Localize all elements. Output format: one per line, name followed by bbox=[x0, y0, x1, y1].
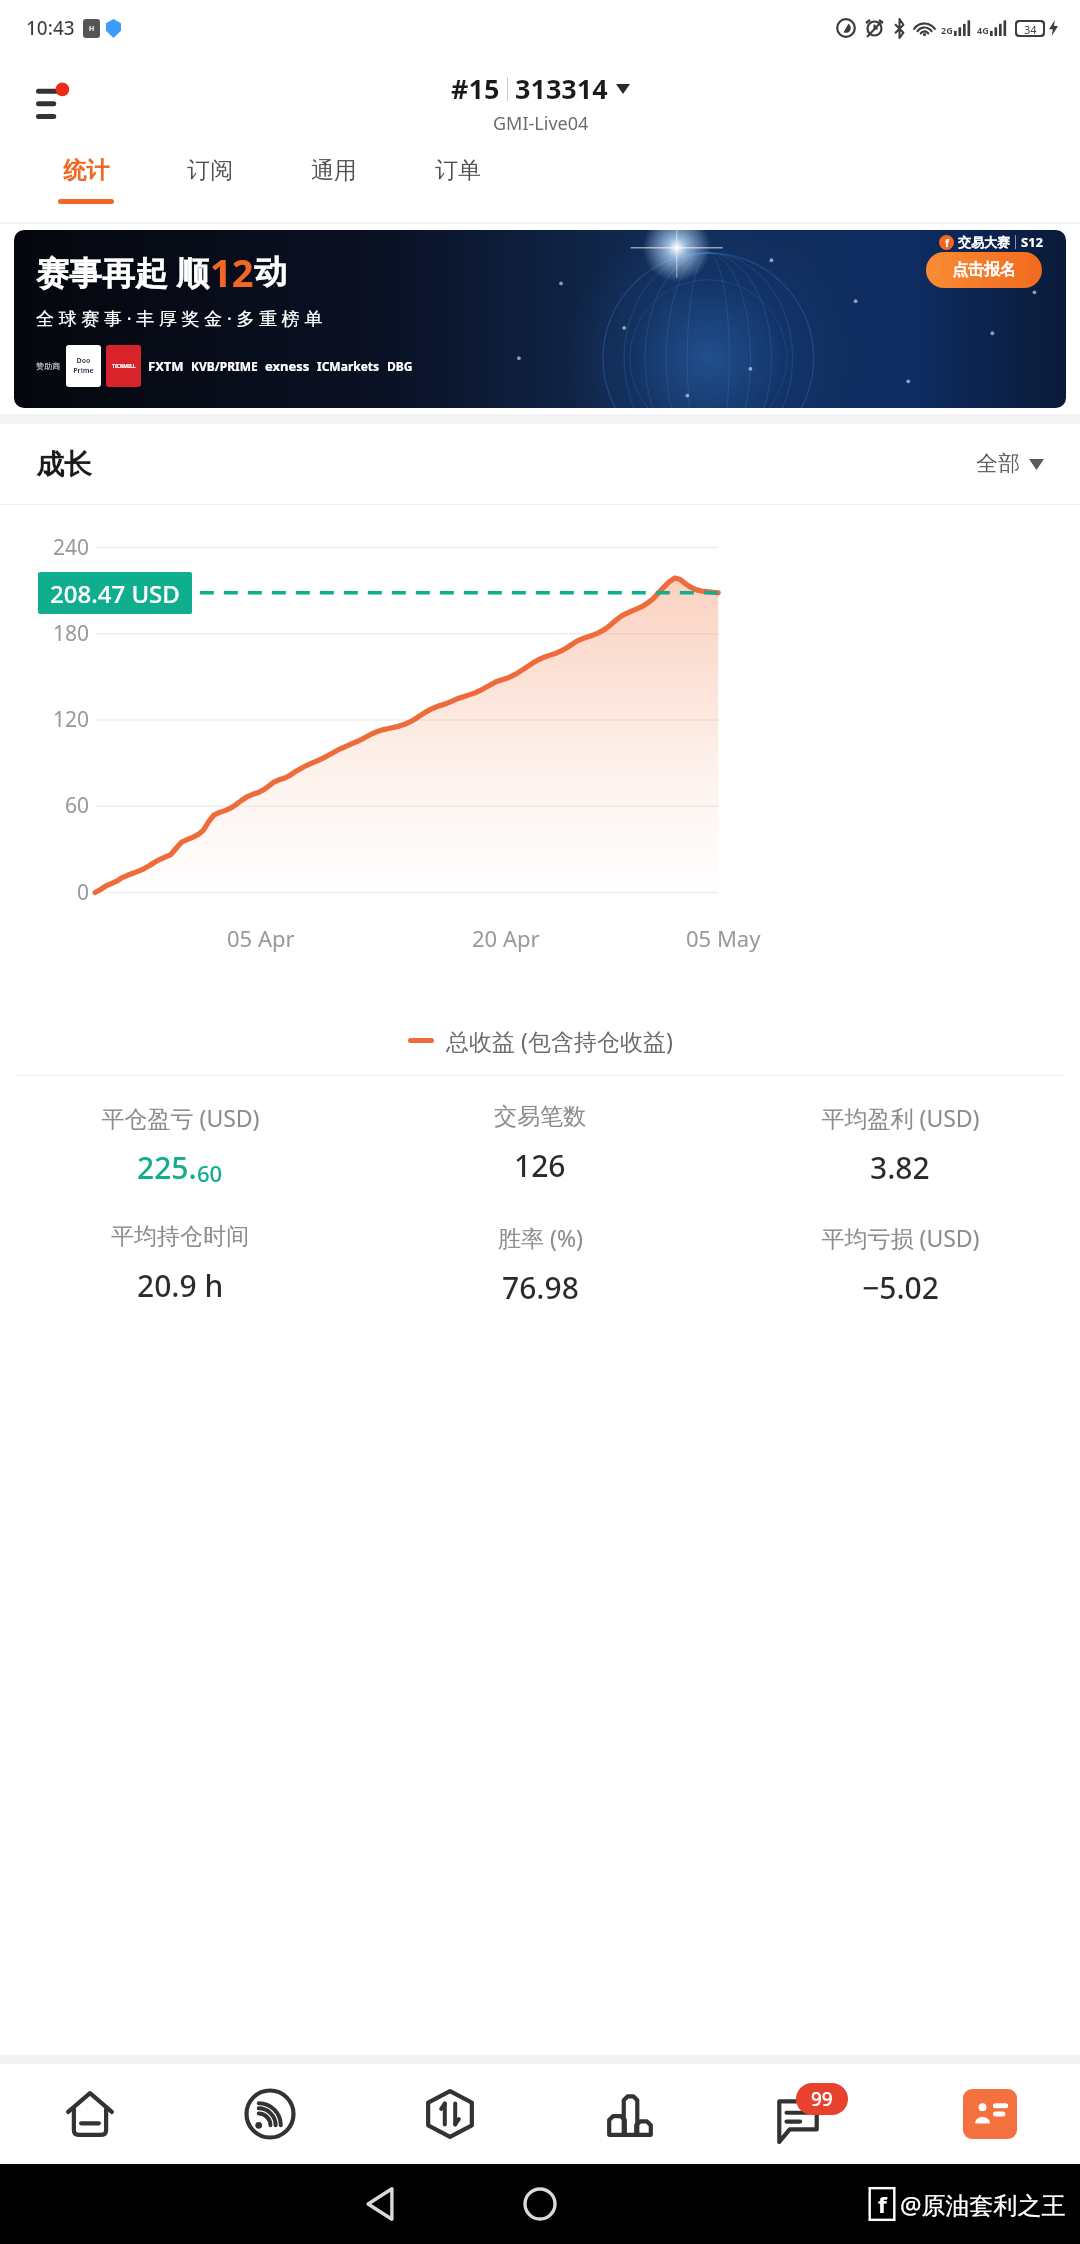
staticText: 60 bbox=[197, 1158, 223, 1188]
staticText: 胜率 (%) bbox=[498, 1222, 583, 1253]
staticText: H bbox=[89, 24, 95, 34]
staticText: GMI-Live04 bbox=[493, 111, 589, 136]
staticText: 成长 bbox=[36, 447, 92, 482]
staticText: 4G bbox=[977, 24, 989, 36]
staticText: KVB/PRIME bbox=[191, 358, 258, 374]
staticText: 20 Apr bbox=[472, 923, 540, 953]
staticText: 34 bbox=[1024, 22, 1037, 35]
staticText: Doo Prime bbox=[73, 356, 94, 376]
button[interactable]: 赛事再起 顺 bbox=[14, 230, 1066, 408]
staticText: 60 bbox=[64, 791, 89, 820]
staticText: 全 球 赛 事 · 丰 厚 奖 金 · 多 重 榜 单 bbox=[36, 306, 323, 331]
staticText: 统计 bbox=[63, 156, 109, 185]
staticText: @原油套利之王 bbox=[900, 2188, 1066, 2221]
staticText: DBG bbox=[387, 358, 413, 374]
staticText: 平均亏损 (USD) bbox=[821, 1222, 980, 1253]
button[interactable]: 订单 bbox=[396, 150, 520, 222]
staticText: f bbox=[945, 236, 949, 250]
staticText: 交易大赛 bbox=[958, 234, 1010, 250]
staticText: 99 bbox=[811, 2086, 833, 2112]
button[interactable]: 平均盈利 (USD) bbox=[720, 1102, 1080, 1188]
button[interactable]: #15 bbox=[451, 70, 630, 107]
button[interactable]: Signals bbox=[180, 2064, 360, 2164]
staticText: 10:43 bbox=[26, 15, 75, 41]
staticText: 120 bbox=[52, 705, 89, 734]
button[interactable]: Copy trade bbox=[360, 2064, 540, 2164]
staticText: 平仓盈亏 (USD) bbox=[101, 1102, 260, 1133]
staticText: 动 bbox=[254, 251, 287, 293]
staticText: 3.82 bbox=[870, 1147, 930, 1188]
button[interactable]: 平均持仓时间 bbox=[0, 1222, 360, 1306]
staticText: 2G bbox=[941, 24, 953, 36]
staticText: 赞助商 bbox=[36, 361, 60, 371]
staticText: 20.9 h bbox=[137, 1265, 224, 1306]
staticText: −5.02 bbox=[862, 1267, 939, 1308]
staticText: 通用 bbox=[311, 156, 357, 185]
staticText: 240 bbox=[52, 533, 89, 562]
staticText: f bbox=[878, 2189, 887, 2219]
staticText: 平均持仓时间 bbox=[111, 1222, 249, 1251]
staticText: #15 bbox=[451, 70, 500, 107]
staticText: TICKMILL bbox=[112, 363, 136, 370]
staticText: FXTM bbox=[148, 357, 184, 375]
button[interactable]: 交易笔数 bbox=[360, 1102, 720, 1186]
staticText: 05 May bbox=[686, 923, 761, 953]
staticText: 76.98 bbox=[502, 1267, 579, 1308]
button[interactable]: 点击报名 bbox=[926, 252, 1042, 288]
button[interactable]: 全部 bbox=[976, 450, 1044, 478]
button[interactable]: Home bbox=[0, 2064, 180, 2164]
staticText: 全部 bbox=[976, 450, 1020, 478]
button[interactable]: Profile bbox=[900, 2064, 1080, 2164]
button[interactable]: Menu bbox=[36, 81, 84, 125]
staticText: 0 bbox=[76, 878, 89, 907]
button[interactable]: Statistics bbox=[540, 2064, 720, 2164]
staticText: 12 bbox=[210, 246, 254, 298]
button[interactable]: 订阅 bbox=[148, 150, 272, 222]
button[interactable]: 通用 bbox=[272, 150, 396, 222]
staticText: 208.47 USD bbox=[50, 577, 180, 610]
staticText: 225. bbox=[137, 1147, 197, 1188]
staticText: 总收益 (包含持仓收益) bbox=[446, 1025, 673, 1056]
staticText: 313314 bbox=[515, 70, 608, 107]
staticText: 订阅 bbox=[187, 156, 233, 185]
staticText: 交易笔数 bbox=[494, 1102, 586, 1131]
button[interactable]: 统计 bbox=[24, 150, 148, 222]
button[interactable]: 胜率 (%) bbox=[360, 1222, 720, 1308]
staticText: 180 bbox=[52, 619, 89, 648]
staticText: 赛事再起 顺 bbox=[36, 250, 210, 295]
button[interactable]: 平均亏损 (USD) bbox=[720, 1222, 1080, 1308]
staticText: ICMarkets bbox=[317, 358, 380, 374]
staticText: exness bbox=[265, 357, 310, 375]
staticText: 订单 bbox=[435, 156, 481, 185]
button[interactable]: Messages, 99 unread bbox=[720, 2064, 900, 2164]
staticText: 点击报名 bbox=[952, 260, 1016, 280]
staticText: 平均盈利 (USD) bbox=[821, 1102, 980, 1133]
staticText: 126 bbox=[514, 1145, 566, 1186]
button[interactable]: 平仓盈亏 (USD) bbox=[0, 1102, 360, 1188]
staticText: S12 bbox=[1021, 233, 1044, 251]
staticText: 05 Apr bbox=[227, 923, 295, 953]
